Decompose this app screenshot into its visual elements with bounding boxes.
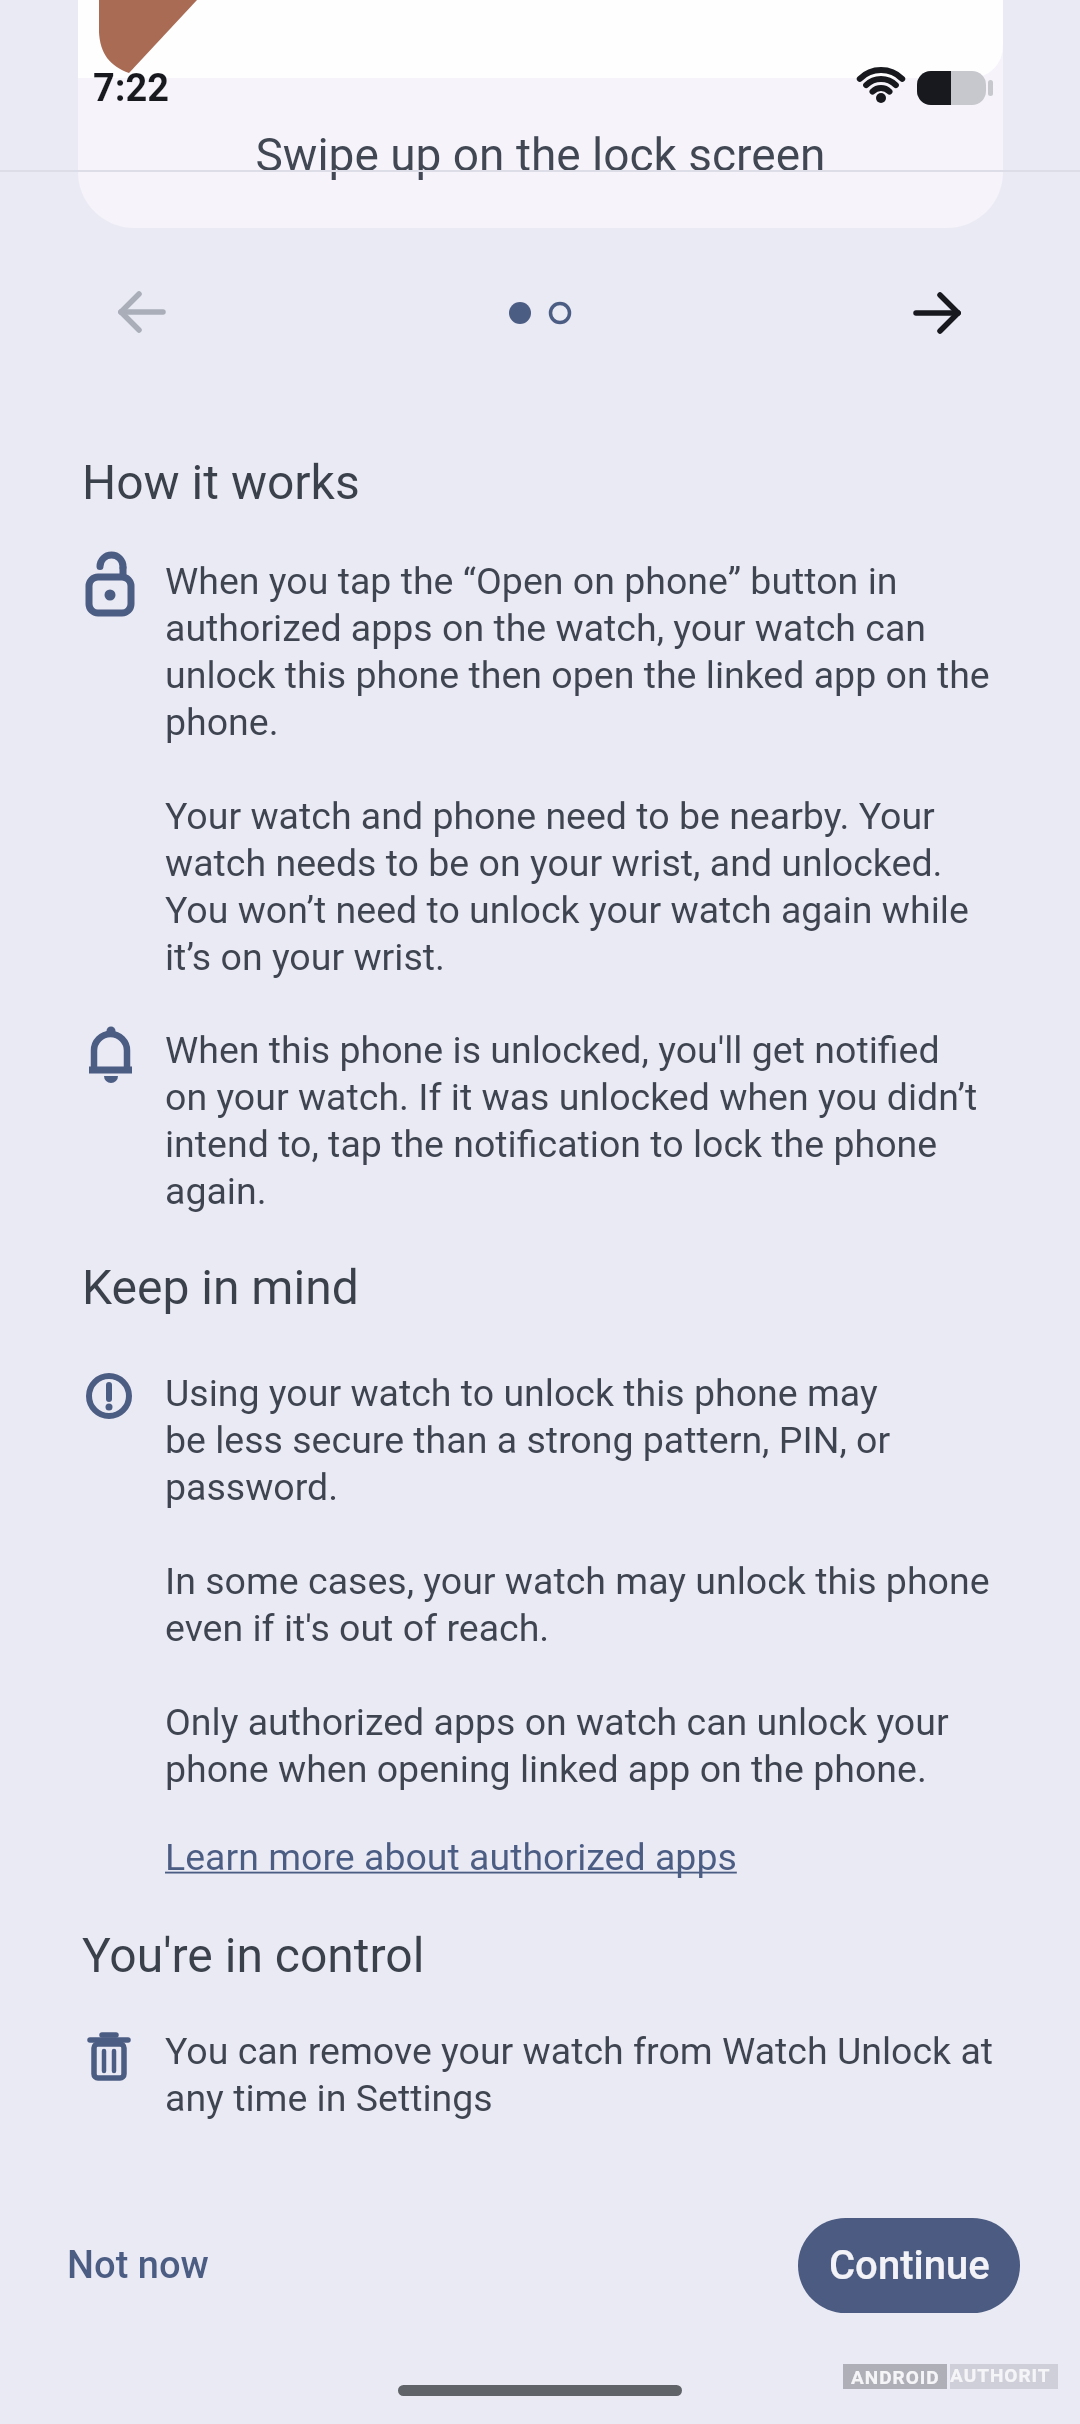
staticText: 7:22 xyxy=(93,66,170,111)
staticText: Not now xyxy=(67,2243,209,2288)
staticText: When you tap the “Open on phone” button … xyxy=(165,559,1075,979)
staticText: Using your watch to unlock this phone ma… xyxy=(165,1371,1075,1791)
staticText: How it works xyxy=(82,454,360,510)
staticText: When this phone is unlocked, you'll get … xyxy=(165,1028,1075,1213)
button[interactable] xyxy=(95,266,187,358)
button[interactable]: Learn more about authorized apps xyxy=(165,1835,737,1879)
button[interactable]: Not now xyxy=(47,2230,189,2300)
staticText: AUTHORITY xyxy=(950,2364,1058,2389)
staticText: Continue xyxy=(829,2242,990,2289)
button[interactable] xyxy=(892,267,984,359)
staticText: ANDROID xyxy=(851,2366,940,2388)
staticText: You're in control xyxy=(82,1927,425,1983)
staticText: Keep in mind xyxy=(82,1259,359,1315)
button[interactable]: Continue xyxy=(798,2218,1020,2313)
staticText: Swipe up on the lock screen xyxy=(78,128,1003,182)
staticText: You can remove your watch from Watch Unl… xyxy=(165,2029,1075,2120)
staticText: Learn more about authorized apps xyxy=(165,1835,737,1879)
